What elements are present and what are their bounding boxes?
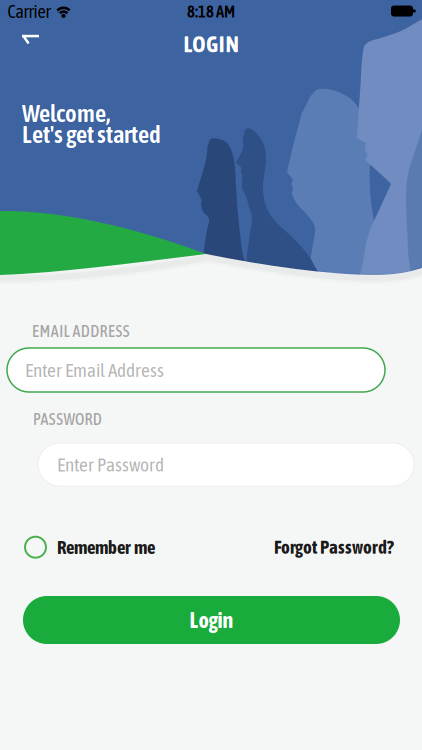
staticText: 8:18 AM (187, 2, 235, 21)
button[interactable]: Enter Email Address (7, 348, 385, 392)
staticText: Remember me (57, 536, 155, 558)
staticText: PASSWORD (33, 410, 102, 428)
staticText: Enter Email Address (25, 359, 164, 381)
button[interactable]: Remember me (25, 536, 155, 558)
staticText: Login (189, 607, 233, 633)
staticText: Enter Password (57, 453, 164, 476)
staticText: LOGIN (183, 31, 239, 57)
button[interactable]: Forgot Password? (274, 536, 394, 558)
staticText: Carrier (7, 1, 50, 22)
staticText: Welcome, (22, 99, 110, 127)
button[interactable]: Login (23, 596, 400, 644)
staticText: Let's get started (22, 120, 161, 148)
button[interactable]: Back (9, 19, 53, 63)
staticText: EMAIL ADDRESS (32, 322, 130, 340)
button[interactable]: Enter Password (38, 443, 414, 486)
staticText: Forgot Password? (274, 536, 394, 558)
